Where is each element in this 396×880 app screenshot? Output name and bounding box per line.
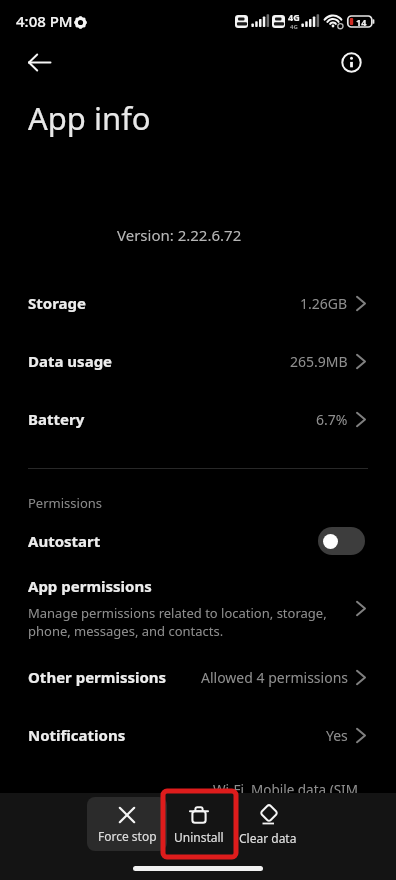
staticText: Version: 2.22.6.72 <box>117 225 242 245</box>
staticText: Battery <box>28 409 85 429</box>
staticText: 6.7% <box>316 410 348 429</box>
staticText: Allowed 4 permissions <box>201 668 348 687</box>
staticText: Force stop <box>98 828 157 844</box>
staticText: Data usage <box>28 351 113 371</box>
staticText: Manage permissions related to location, … <box>28 604 327 640</box>
button[interactable]: Storage <box>0 274 396 332</box>
staticText: 1.26GB <box>300 294 348 313</box>
button[interactable]: Autostart <box>0 512 396 570</box>
staticText: Wi-Fi, Mobile data (SIM <box>213 781 358 799</box>
button[interactable]: Battery <box>0 390 396 448</box>
staticText: Yes <box>326 726 348 745</box>
button[interactable]: App permissions <box>0 570 396 648</box>
staticText: Permissions <box>28 494 103 512</box>
staticText: Clear data <box>239 830 297 846</box>
button[interactable]: Notifications <box>0 706 396 764</box>
staticText: 265.9MB <box>290 352 348 371</box>
staticText: App permissions <box>28 576 152 596</box>
staticText: Uninstall <box>174 829 224 845</box>
button[interactable]: Data usage <box>0 332 396 390</box>
staticText: Notifications <box>28 725 126 745</box>
staticText: App info <box>28 97 151 139</box>
button[interactable]: Force stop <box>88 807 166 844</box>
staticText: Storage <box>28 293 86 313</box>
staticText: 4G <box>288 11 300 23</box>
staticText: Autostart <box>28 531 101 551</box>
button[interactable] <box>16 42 62 82</box>
button[interactable] <box>330 42 372 82</box>
staticText: 14 <box>356 16 367 28</box>
staticText: 4G <box>290 23 298 31</box>
staticText: Other permissions <box>28 667 167 687</box>
button[interactable]: Clear data <box>229 806 307 846</box>
staticText: 4:08 PM <box>16 11 73 31</box>
button[interactable]: Uninstall <box>160 806 238 845</box>
button[interactable]: Other permissions <box>0 648 396 706</box>
button[interactable] <box>318 527 365 555</box>
